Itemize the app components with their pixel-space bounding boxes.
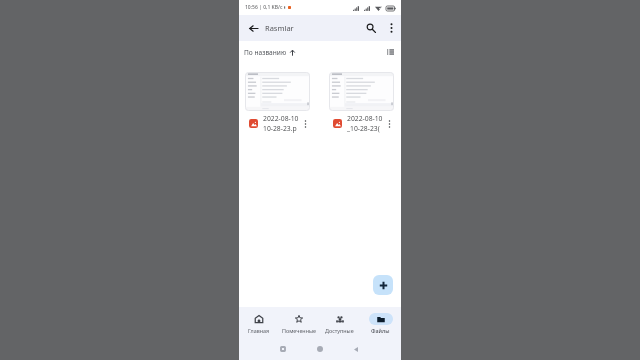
staticText: Rasmlar bbox=[265, 23, 294, 33]
staticText: Главная bbox=[248, 327, 270, 334]
staticText: По названию bbox=[244, 48, 287, 57]
button[interactable]: Помеченные bbox=[279, 307, 319, 337]
staticText: 10-28-23.p… bbox=[263, 124, 301, 133]
button[interactable]: Home bbox=[314, 343, 326, 355]
button[interactable]: 2022-08-10 bbox=[329, 72, 394, 133]
staticText: Файлы bbox=[371, 327, 390, 334]
button[interactable]: More options bbox=[383, 20, 399, 36]
button[interactable]: Back bbox=[350, 343, 362, 355]
staticText: Доступные bbox=[325, 327, 354, 334]
staticText: 10:56 | 0,1 KB/c bbox=[245, 4, 283, 11]
staticText: _10-28-23(… bbox=[347, 124, 385, 133]
button[interactable]: Back bbox=[243, 18, 263, 38]
button[interactable]: Доступные bbox=[319, 307, 360, 337]
button[interactable]: Add bbox=[373, 275, 393, 295]
staticText: 2022-08-10_ bbox=[263, 114, 301, 123]
button[interactable]: Search bbox=[362, 19, 380, 37]
button[interactable]: 2022-08-10_ bbox=[245, 72, 310, 133]
staticText: Помеченные bbox=[282, 327, 317, 334]
button[interactable]: View mode bbox=[383, 45, 397, 59]
button[interactable]: По названию bbox=[242, 45, 297, 60]
button[interactable]: Файлы bbox=[360, 307, 401, 337]
button[interactable]: Recents bbox=[277, 343, 289, 355]
button[interactable]: Главная bbox=[239, 307, 279, 337]
button[interactable]: More options bbox=[301, 119, 310, 128]
staticText: 2022-08-10 bbox=[347, 114, 383, 123]
button[interactable]: More options bbox=[385, 119, 394, 128]
